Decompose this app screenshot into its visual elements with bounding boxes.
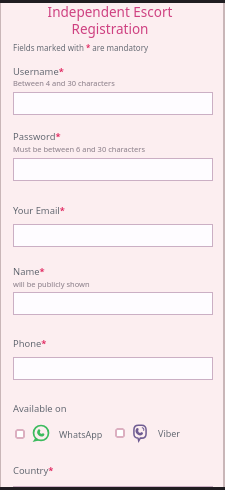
- button[interactable]: [13, 158, 213, 181]
- staticText: Fields marked with * are mandatory: [13, 42, 149, 53]
- staticText: Must be between 6 and 30 characters: [13, 144, 145, 154]
- staticText: Available on: [13, 402, 67, 415]
- staticText: Between 4 and 30 characters: [13, 78, 115, 88]
- other: Viber: [132, 425, 148, 441]
- staticText: Username*: [13, 65, 64, 78]
- button[interactable]: [13, 224, 213, 247]
- button[interactable]: Viber: [115, 425, 181, 441]
- staticText: Viber: [158, 427, 181, 439]
- staticText: Country*: [13, 464, 54, 477]
- button[interactable]: [13, 92, 213, 115]
- staticText: Independent Escort Registration: [0, 3, 220, 38]
- staticText: Phone*: [13, 337, 47, 350]
- staticText: WhatsApp: [59, 428, 103, 440]
- button[interactable]: [13, 292, 213, 315]
- staticText: Name*: [13, 265, 45, 278]
- button[interactable]: [13, 357, 213, 380]
- other: WhatsApp: [32, 425, 49, 442]
- button[interactable]: [13, 486, 213, 490]
- button[interactable]: WhatsApp: [15, 425, 103, 442]
- staticText: will be publicly shown: [13, 279, 90, 289]
- staticText: Your Email*: [13, 204, 65, 217]
- staticText: Password*: [13, 130, 61, 143]
